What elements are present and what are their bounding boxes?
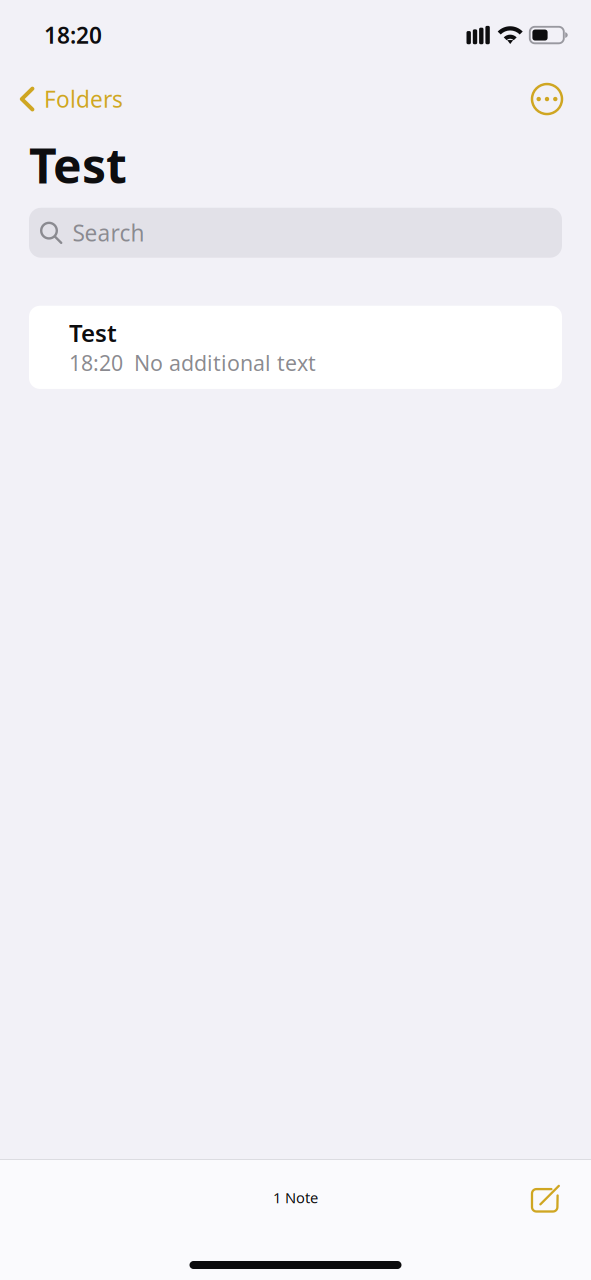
button[interactable]: Folders [0, 76, 123, 122]
button[interactable]: More options [532, 76, 591, 122]
staticText: Folders [44, 84, 123, 114]
staticText: Test [69, 317, 117, 349]
staticText: 1 Note [273, 1188, 318, 1207]
staticText: Search [72, 218, 144, 248]
staticText: 18:20 [44, 20, 102, 50]
staticText: No additional text [134, 349, 316, 377]
staticText: 18:20 [69, 349, 123, 377]
staticText: Test [29, 133, 127, 197]
button[interactable]: Test [29, 306, 562, 389]
button[interactable]: New note [531, 1176, 591, 1222]
button[interactable]: Search [29, 208, 562, 258]
